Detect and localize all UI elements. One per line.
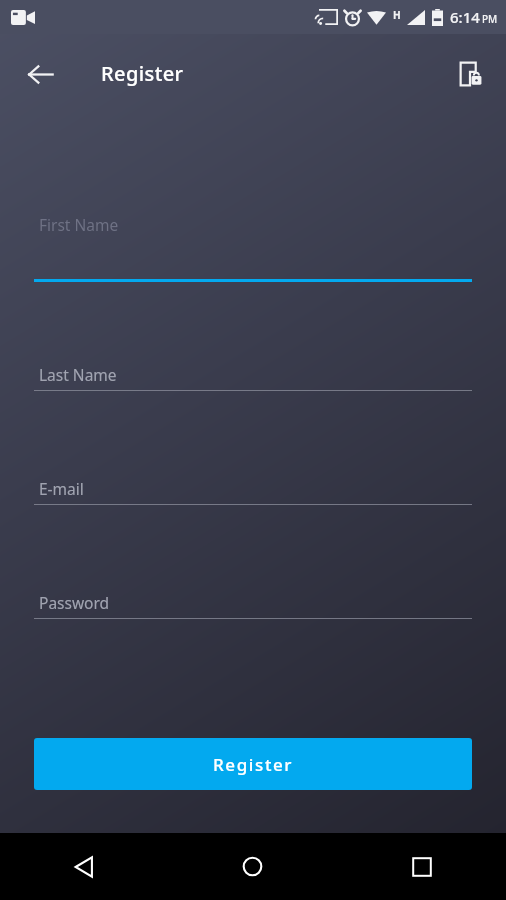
staticText: Register [101,60,184,87]
staticText: First Name [39,214,119,235]
button[interactable]: Password [34,578,472,634]
button[interactable]: E-mail [34,464,472,520]
button[interactable]: Back [16,50,64,98]
button[interactable]: First Name [34,200,472,299]
button[interactable]: Last Name [34,350,472,406]
staticText: H [393,8,401,22]
button[interactable]: Home [168,833,337,900]
button[interactable]: Back [0,833,168,900]
button[interactable]: Screen lock [446,50,494,98]
staticText: Last Name [39,364,117,385]
staticText: E-mail [39,478,84,499]
button[interactable]: Recent apps [337,833,506,900]
button[interactable]: Register [34,738,472,790]
staticText: Password [39,592,110,613]
staticText: PM [482,12,498,26]
staticText: Register [213,753,294,776]
staticText: 6:14 [450,7,480,27]
